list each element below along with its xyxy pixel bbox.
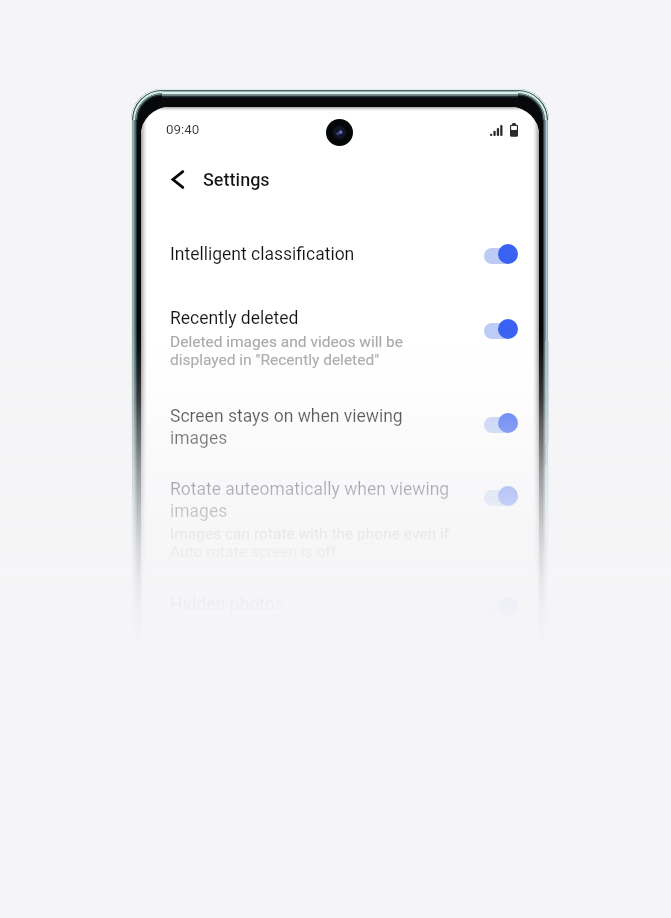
button[interactable] (141, 465, 535, 551)
staticText: 09:40 (166, 122, 200, 138)
staticText: Screen stays on when viewing images (170, 406, 403, 448)
button[interactable]: Toggle (484, 413, 518, 433)
button[interactable] (141, 294, 535, 380)
button[interactable]: Toggle (484, 319, 518, 339)
button[interactable]: Back (166, 168, 190, 192)
button[interactable]: Toggle (484, 486, 518, 506)
staticText: Settings (203, 169, 270, 190)
button[interactable] (141, 392, 535, 446)
button[interactable]: Toggle (484, 244, 518, 264)
button[interactable] (141, 230, 535, 284)
staticText: Rotate auteomatically when viewing image… (170, 479, 450, 521)
staticText: Deleted images and videos will be displa… (170, 333, 404, 369)
staticText: Images can rotate with the phone even if… (170, 525, 450, 561)
staticText: Intelligent classification (170, 244, 355, 265)
staticText: Recently deleted (170, 308, 299, 329)
